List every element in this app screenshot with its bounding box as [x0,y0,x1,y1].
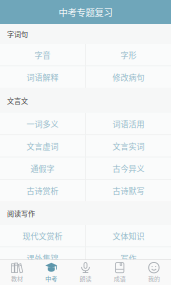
staticText: 古诗默写 [112,185,144,196]
button[interactable]: 中考 [34,260,68,285]
staticText: 我的 [148,274,160,283]
staticText: 一词多义 [27,118,59,129]
staticText: 阅读写作 [7,208,35,218]
button[interactable]: 写作 [86,247,171,269]
button[interactable]: 现代文赏析 [0,225,85,247]
staticText: 通假字 [31,162,55,174]
button[interactable]: 文体知识 [86,225,171,247]
button[interactable]: 古诗默写 [86,180,171,201]
button[interactable]: 一词多义 [0,113,85,134]
staticText: 文言虚词 [27,140,59,152]
staticText: 文言实词 [112,140,144,152]
button[interactable]: 通假字 [0,157,85,179]
button[interactable]: 成语 [103,260,137,285]
staticText: 文言文 [7,95,28,105]
staticText: 现代文赏析 [23,230,63,242]
staticText: 词语解释 [27,71,59,83]
button[interactable]: 朗读 [68,260,103,285]
staticText: 字词句 [7,29,28,39]
staticText: 古今异义 [112,162,144,174]
staticText: 修改病句 [112,71,144,83]
button[interactable]: 词语解释 [0,66,85,88]
button[interactable]: 修改病句 [86,66,171,88]
staticText: 朗读 [79,274,91,283]
staticText: 中考 [45,274,57,283]
staticText: 字音 [35,49,51,61]
staticText: 写作 [120,252,136,264]
staticText: 古诗赏析 [27,185,59,196]
staticText: 词语活用 [112,118,144,129]
staticText: 文体知识 [112,230,144,242]
button[interactable]: 古诗赏析 [0,180,85,201]
button[interactable]: 文言虚词 [0,135,85,157]
button[interactable]: 我的 [137,260,171,285]
button[interactable]: 词语活用 [86,113,171,134]
button[interactable]: 古今异义 [86,157,171,179]
staticText: 课外集锦 [27,252,59,264]
staticText: 教材 [11,274,23,283]
button[interactable]: 字音 [0,44,85,66]
button[interactable]: 中考专题复习 [0,0,171,24]
staticText: 中考专题复习 [58,5,112,19]
staticText: 字形 [120,49,136,61]
button[interactable]: 文言实词 [86,135,171,157]
button[interactable]: 课外集锦 [0,247,85,269]
button[interactable]: 教材 [0,260,34,285]
button[interactable]: 字形 [86,44,171,66]
staticText: 成语 [114,274,126,283]
